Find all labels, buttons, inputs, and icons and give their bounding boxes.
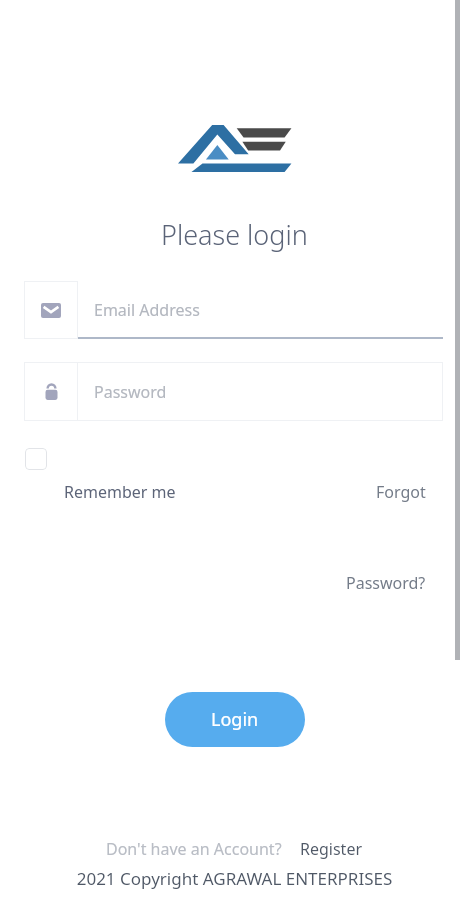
- other: Agrawal Enterprises logo: [178, 122, 292, 174]
- button[interactable]: Remember me: [64, 481, 176, 503]
- staticText: 2021 Copyright AGRAWAL ENTERPRISES: [0, 867, 469, 890]
- staticText: Email Address: [94, 299, 200, 321]
- button[interactable]: Remember me: [25, 448, 47, 470]
- staticText: Forgot: [376, 481, 426, 503]
- staticText: Password: [94, 381, 167, 403]
- staticText: Password?: [346, 572, 426, 594]
- button[interactable]: Password: [24, 362, 443, 421]
- button[interactable]: Register: [300, 838, 363, 860]
- staticText: Login: [211, 707, 259, 732]
- staticText: Don't have an Account?: [106, 838, 282, 860]
- button[interactable]: Login: [165, 692, 305, 747]
- button[interactable]: Email Address: [24, 281, 443, 339]
- staticText: Please login: [161, 216, 308, 253]
- button[interactable]: Forgot: [346, 448, 426, 594]
